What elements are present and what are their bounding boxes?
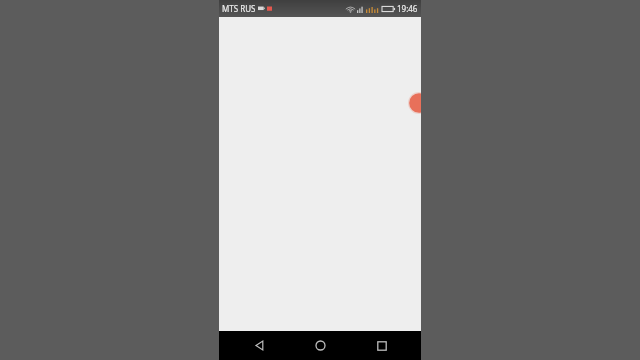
button[interactable]: Recents [360, 331, 404, 360]
button[interactable]: Home [298, 331, 342, 360]
button[interactable]: Back [237, 331, 281, 360]
staticText: 19:46 [397, 3, 418, 14]
button[interactable]: Add [408, 92, 421, 114]
staticText: MTS RUS [222, 3, 256, 14]
